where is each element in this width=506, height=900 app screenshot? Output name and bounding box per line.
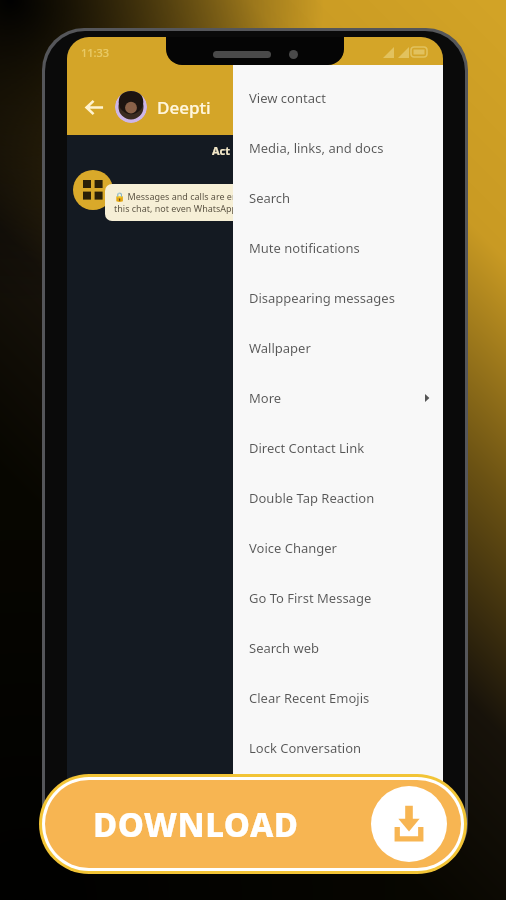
button[interactable]: Wallpaper [233,323,443,373]
staticText: Double Tap Reaction [249,489,375,507]
staticText: Wallpaper [249,339,311,357]
button[interactable]: Lock Conversation [233,723,443,773]
button[interactable]: Double Tap Reaction [233,473,443,523]
staticText: 11:33 [81,45,110,60]
button[interactable]: Deepti [157,96,211,119]
staticText: More [249,389,282,407]
staticText: Search [249,189,291,207]
staticText: Media, links, and docs [249,139,384,157]
staticText: Lock Conversation [249,739,362,757]
staticText: Direct Contact Link [249,439,365,457]
staticText: Search web [249,639,320,657]
button[interactable]: DOWNLOAD [45,780,461,868]
button[interactable]: Back [77,90,111,124]
staticText: Disappearing messages [249,289,395,307]
button[interactable]: Clear Recent Emojis [233,673,443,723]
staticText: Voice Changer [249,539,337,557]
staticText: View contact [249,89,326,107]
button[interactable]: View contact [233,73,443,123]
staticText: Clear Recent Emojis [249,689,370,707]
staticText: Deepti [157,96,211,119]
button[interactable]: Media, links, and docs [233,123,443,173]
button[interactable]: Direct Contact Link [233,423,443,473]
staticText: Act like a friend [212,143,299,158]
button[interactable]: More [233,373,443,423]
button[interactable]: Search web [233,623,443,673]
staticText: DOWNLOAD [93,802,299,847]
button[interactable] [115,91,147,123]
button[interactable]: Go To First Message [233,573,443,623]
button[interactable]: Mute notifications [233,223,443,273]
staticText: 🔒 Messages and calls are end-to-end encr… [114,190,406,215]
button[interactable]: Voice Changer [233,523,443,573]
button[interactable]: Search [233,173,443,223]
staticText: Mute notifications [249,239,360,257]
staticText: Go To First Message [249,589,372,607]
button[interactable]: Disappearing messages [233,273,443,323]
